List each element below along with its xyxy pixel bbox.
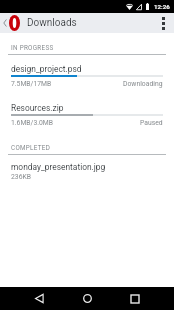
button[interactable]: Navigate up (3, 13, 20, 33)
staticText: monday_presentation.jpg (11, 162, 106, 172)
staticText: 236KB (11, 173, 31, 181)
button[interactable]: More options (152, 13, 174, 33)
button[interactable]: Home (72, 287, 102, 310)
button[interactable]: Back (24, 287, 54, 310)
staticText: IN PROGRESS (11, 44, 54, 51)
button[interactable]: design_project.psd (0, 55, 174, 94)
button[interactable]: Recent apps (120, 287, 150, 310)
staticText: Resources.zip (11, 103, 64, 113)
staticText: 7.5MB/17MB (11, 80, 52, 88)
staticText: 12:26 (154, 3, 170, 10)
staticText: Downloads (27, 17, 77, 29)
staticText: COMPLETED (11, 144, 51, 151)
button[interactable]: monday_presentation.jpg (0, 155, 174, 181)
staticText: 1.6MB/3.0MB (11, 119, 54, 127)
staticText: design_project.psd (11, 64, 82, 74)
button[interactable]: Resources.zip (0, 94, 174, 133)
staticText: Downloading (123, 80, 163, 88)
staticText: Paused (140, 119, 163, 127)
